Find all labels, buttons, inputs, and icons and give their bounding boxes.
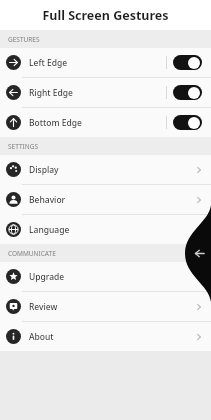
staticText: Language — [29, 224, 70, 236]
button[interactable]: Bottom Edge — [0, 108, 211, 137]
button[interactable]: Right Edge — [0, 78, 211, 107]
button[interactable]: Review — [0, 292, 211, 321]
staticText: Bottom Edge — [29, 117, 82, 129]
staticText: Left Edge — [29, 57, 68, 69]
button[interactable]: Bottom Edge toggle — [173, 115, 202, 130]
button[interactable]: Language — [0, 215, 211, 244]
button[interactable]: Display — [0, 155, 211, 184]
staticText: SETTINGS — [8, 142, 38, 151]
staticText: Right Edge — [29, 87, 73, 99]
staticText: Full Screen Gestures — [42, 7, 169, 24]
staticText: Behavior — [29, 194, 66, 206]
staticText: GESTURES — [8, 35, 40, 44]
staticText: Review — [29, 301, 58, 313]
staticText: Upgrade — [29, 271, 65, 283]
staticText: Display — [29, 164, 59, 176]
button[interactable]: Upgrade — [0, 262, 211, 291]
button[interactable]: Right Edge toggle — [173, 85, 202, 100]
staticText: COMMUNICATE — [8, 249, 56, 258]
button[interactable]: Left Edge toggle — [173, 55, 202, 70]
button[interactable]: Behavior — [0, 185, 211, 214]
button[interactable]: Left Edge — [0, 48, 211, 77]
button[interactable]: About — [0, 322, 211, 351]
staticText: About — [29, 331, 54, 343]
